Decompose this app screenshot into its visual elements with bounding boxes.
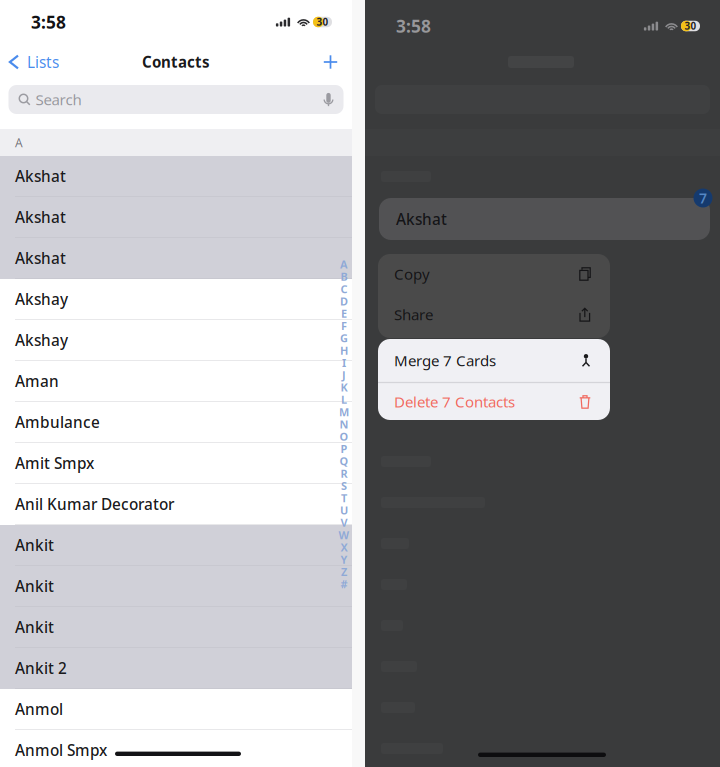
button[interactable]: Ambulance xyxy=(0,402,352,443)
staticText: A xyxy=(340,257,348,272)
button[interactable]: Lists xyxy=(0,47,69,77)
staticText: Y xyxy=(340,552,347,567)
staticText: R xyxy=(340,466,347,481)
button[interactable]: Ankit xyxy=(0,566,352,607)
staticText: Anil Kumar Decorator xyxy=(15,494,174,515)
button[interactable]: Anmol Smpx xyxy=(0,730,352,767)
staticText: M xyxy=(339,404,349,419)
staticText: C xyxy=(340,281,347,296)
staticText: Anmol xyxy=(15,699,63,720)
button[interactable]: Akshat xyxy=(0,156,352,197)
staticText: Ankit xyxy=(15,535,54,556)
staticText: U xyxy=(340,503,348,518)
staticText: O xyxy=(339,429,348,444)
staticText: Akshay xyxy=(15,289,68,310)
staticText: Copy xyxy=(394,264,430,284)
staticText: Ambulance xyxy=(15,412,100,433)
button[interactable]: Copy xyxy=(378,254,610,294)
staticText: Akshay xyxy=(15,330,68,351)
button[interactable]: Merge 7 Cards xyxy=(378,339,610,382)
staticText: I xyxy=(342,355,346,370)
staticText: E xyxy=(341,306,347,321)
staticText: Akshat xyxy=(15,248,66,269)
staticText: Merge 7 Cards xyxy=(394,350,496,371)
staticText: Ankit 2 xyxy=(15,658,67,679)
staticText: 7 xyxy=(699,188,707,208)
staticText: P xyxy=(340,441,347,456)
staticText: Ankit xyxy=(15,576,54,597)
button[interactable]: Akshat xyxy=(0,238,352,279)
button[interactable]: Search xyxy=(8,85,343,114)
staticText: V xyxy=(340,515,347,530)
button[interactable]: Section index xyxy=(338,252,350,596)
button[interactable]: Add contact xyxy=(313,47,352,77)
staticText: 3:58 xyxy=(31,10,66,34)
staticText: J xyxy=(342,368,346,382)
staticText: Aman xyxy=(15,371,59,392)
staticText: X xyxy=(340,540,347,555)
button[interactable]: Akshay xyxy=(0,279,352,320)
staticText: W xyxy=(338,527,349,542)
staticText: G xyxy=(340,331,348,346)
staticText: A xyxy=(15,134,23,151)
staticText: Akshat xyxy=(396,209,447,229)
button[interactable]: Ankit xyxy=(0,525,352,566)
button[interactable]: Ankit 2 xyxy=(0,648,352,689)
staticText: 30 xyxy=(684,19,696,33)
staticText: B xyxy=(340,269,347,284)
staticText: T xyxy=(341,491,347,505)
staticText: L xyxy=(341,392,347,407)
staticText: Delete 7 Contacts xyxy=(394,391,515,412)
staticText: 3:58 xyxy=(396,14,431,38)
staticText: 30 xyxy=(316,15,328,29)
staticText: Akshat xyxy=(15,166,66,187)
staticText: Share xyxy=(394,304,433,325)
button[interactable]: Ankit xyxy=(0,607,352,648)
staticText: D xyxy=(340,294,348,309)
staticText: N xyxy=(339,417,348,432)
button[interactable]: Anil Kumar Decorator xyxy=(0,484,352,525)
staticText: Search xyxy=(35,89,81,110)
staticText: S xyxy=(341,478,347,493)
staticText: K xyxy=(340,380,347,395)
staticText: Lists xyxy=(27,52,59,72)
staticText: Ankit xyxy=(15,617,54,638)
staticText: Contacts xyxy=(142,52,210,72)
button[interactable]: Akshay xyxy=(0,320,352,361)
button[interactable]: Aman xyxy=(0,361,352,402)
button[interactable]: Delete 7 Contacts xyxy=(378,383,610,420)
button[interactable]: Share xyxy=(378,294,610,335)
staticText: F xyxy=(341,318,347,333)
staticText: Z xyxy=(341,564,347,579)
staticText: Akshat xyxy=(15,207,66,228)
button[interactable]: Amit Smpx xyxy=(0,443,352,484)
staticText: H xyxy=(340,343,348,358)
staticText: Q xyxy=(339,454,348,469)
button[interactable]: Anmol xyxy=(0,689,352,730)
staticText: Amit Smpx xyxy=(15,453,94,474)
staticText: # xyxy=(340,577,347,592)
button[interactable]: Akshat xyxy=(0,197,352,238)
staticText: Anmol Smpx xyxy=(15,740,107,761)
